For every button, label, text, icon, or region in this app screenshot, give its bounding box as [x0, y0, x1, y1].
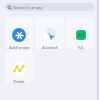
other: Predict	[12, 62, 26, 76]
staticText: Search for an app	[13, 5, 43, 10]
button[interactable]: Build an app	[5, 17, 33, 49]
staticText: Autotrack	[42, 45, 58, 49]
button[interactable]: Predict	[5, 51, 33, 83]
button[interactable]: Search for an app	[5, 3, 94, 11]
staticText: JQL	[78, 45, 84, 49]
staticText: Predict	[13, 79, 25, 83]
other: JQL	[74, 28, 88, 42]
button[interactable]: Autotrack	[35, 17, 64, 49]
staticText: Build an app	[9, 45, 29, 49]
other: Build an app	[12, 28, 26, 42]
button[interactable]: JQL	[66, 17, 95, 49]
other: Autotrack	[43, 28, 57, 42]
